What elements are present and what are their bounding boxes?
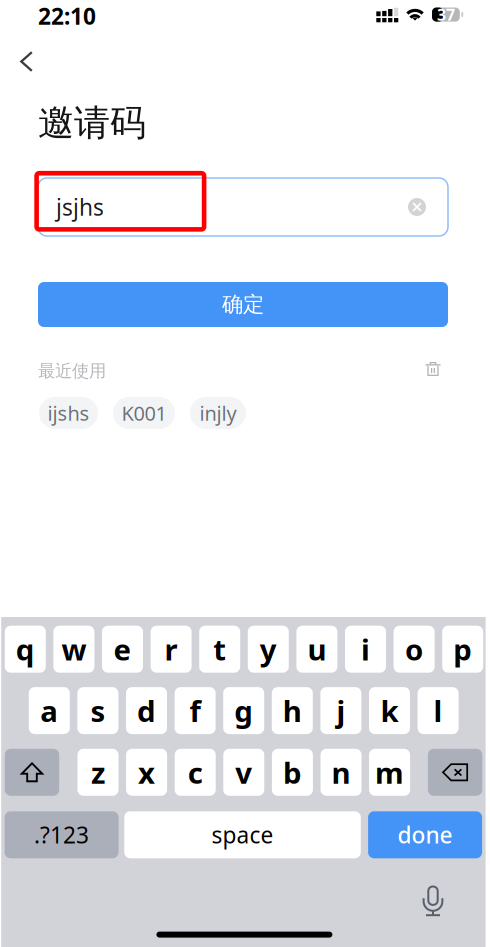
- staticText: space: [211, 820, 273, 850]
- staticText: x: [138, 753, 155, 792]
- button[interactable]: done: [368, 811, 482, 858]
- staticText: n: [331, 753, 350, 792]
- staticText: .?123: [34, 820, 89, 850]
- button[interactable]: ijshs: [39, 397, 98, 429]
- button[interactable]: o: [394, 626, 435, 673]
- staticText: u: [307, 630, 326, 669]
- staticText: 22:10: [38, 1, 96, 31]
- staticText: g: [234, 691, 253, 730]
- button[interactable]: space: [124, 811, 361, 858]
- staticText: K001: [121, 400, 166, 426]
- button[interactable]: k: [369, 687, 410, 734]
- staticText: injly: [199, 400, 236, 426]
- button[interactable]: u: [296, 626, 337, 673]
- button[interactable]: Dictate: [411, 879, 455, 923]
- staticText: k: [380, 691, 398, 730]
- button[interactable]: z: [77, 749, 118, 796]
- button[interactable]: injly: [190, 397, 246, 429]
- button[interactable]: g: [223, 687, 264, 734]
- button[interactable]: K001: [113, 397, 175, 429]
- staticText: a: [40, 691, 58, 730]
- button[interactable]: c: [175, 749, 216, 796]
- staticText: t: [213, 630, 226, 669]
- button[interactable]: i: [345, 626, 386, 673]
- button[interactable]: j: [320, 687, 361, 734]
- staticText: f: [190, 691, 201, 730]
- staticText: w: [61, 630, 86, 669]
- staticText: e: [113, 630, 131, 669]
- staticText: ijshs: [47, 400, 89, 426]
- button[interactable]: h: [272, 687, 313, 734]
- staticText: 邀请码: [38, 101, 146, 145]
- button[interactable]: Clear history: [420, 356, 446, 382]
- button[interactable]: 确定: [38, 282, 448, 327]
- staticText: j: [336, 691, 345, 730]
- staticText: m: [375, 753, 404, 792]
- staticText: r: [165, 630, 178, 669]
- staticText: v: [235, 753, 252, 792]
- button[interactable]: l: [418, 687, 459, 734]
- button[interactable]: e: [102, 626, 143, 673]
- button[interactable]: q: [5, 626, 46, 673]
- staticText: c: [188, 753, 203, 792]
- staticText: 确定: [222, 291, 264, 318]
- button[interactable]: a: [29, 687, 70, 734]
- staticText: b: [283, 753, 302, 792]
- staticText: jsjhs: [56, 192, 104, 222]
- staticText: o: [405, 630, 423, 669]
- button[interactable]: Back: [8, 42, 46, 80]
- button[interactable]: .?123: [5, 811, 119, 858]
- button[interactable]: w: [53, 626, 94, 673]
- staticText: done: [398, 820, 453, 850]
- button[interactable]: r: [151, 626, 192, 673]
- button[interactable]: v: [223, 749, 264, 796]
- staticText: 最近使用: [38, 360, 106, 382]
- staticText: p: [453, 630, 472, 669]
- staticText: z: [91, 753, 105, 792]
- staticText: y: [260, 630, 277, 669]
- button[interactable]: x: [126, 749, 167, 796]
- button[interactable]: Shift: [5, 749, 59, 796]
- button[interactable]: m: [369, 749, 410, 796]
- button[interactable]: s: [77, 687, 118, 734]
- staticText: h: [283, 691, 302, 730]
- button[interactable]: d: [126, 687, 167, 734]
- staticText: d: [137, 691, 156, 730]
- button[interactable]: t: [199, 626, 240, 673]
- button[interactable]: f: [175, 687, 216, 734]
- staticText: l: [434, 691, 443, 730]
- button[interactable]: Delete: [428, 749, 482, 796]
- button[interactable]: y: [248, 626, 289, 673]
- button[interactable]: b: [272, 749, 313, 796]
- staticText: s: [90, 691, 105, 730]
- staticText: q: [16, 630, 35, 669]
- staticText: i: [361, 630, 370, 669]
- staticText: 37: [437, 4, 455, 25]
- button[interactable]: n: [320, 749, 361, 796]
- button[interactable]: p: [442, 626, 483, 673]
